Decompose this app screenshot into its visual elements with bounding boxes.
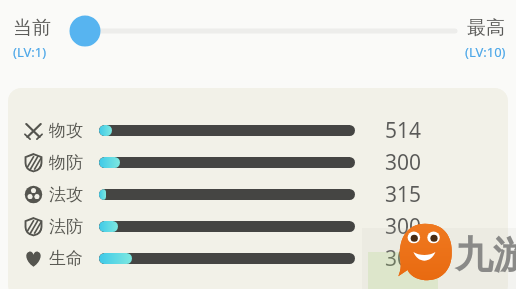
staticText: 法攻 xyxy=(49,184,83,205)
staticText: 生命 xyxy=(49,248,83,269)
staticText: (LV:1) xyxy=(13,43,47,61)
staticText: 法防 xyxy=(49,216,83,237)
button[interactable]: 物攻 xyxy=(8,116,508,144)
staticText: 当前 xyxy=(13,16,51,40)
staticText: 最高 xyxy=(467,16,505,40)
staticText: 315 xyxy=(385,180,422,208)
staticText: 300 xyxy=(385,244,422,272)
staticText: 300 xyxy=(385,148,422,176)
button[interactable]: 物防 xyxy=(8,148,508,176)
button[interactable]: 法防 xyxy=(8,212,508,240)
staticText: 九游 xyxy=(455,231,516,279)
other: Jiuyou watermark xyxy=(396,220,454,284)
button[interactable]: 当前 xyxy=(13,16,51,61)
staticText: 物攻 xyxy=(49,120,83,141)
button[interactable]: 生命 xyxy=(8,244,508,272)
staticText: 514 xyxy=(385,116,422,144)
button[interactable]: 最高 xyxy=(465,16,506,61)
staticText: (LV:10) xyxy=(465,43,506,61)
staticText: 物防 xyxy=(49,152,83,173)
staticText: 300 xyxy=(385,212,422,240)
button[interactable]: 法攻 xyxy=(8,180,508,208)
button[interactable]: Level slider xyxy=(0,0,516,60)
